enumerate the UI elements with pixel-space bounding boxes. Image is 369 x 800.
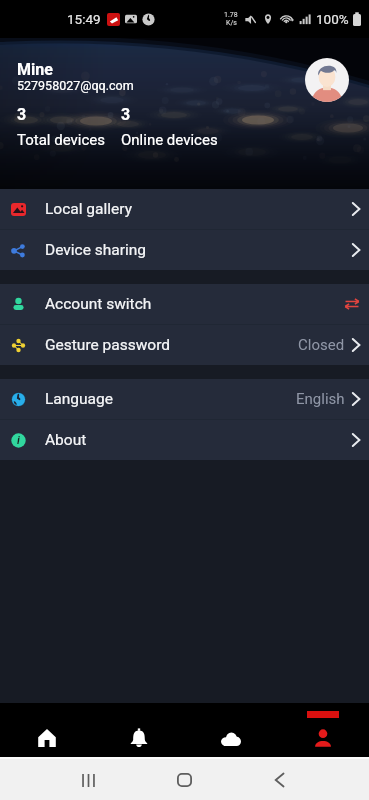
button[interactable]: Notifications (93, 703, 185, 757)
staticText: 100% (316, 11, 349, 27)
staticText: i (17, 434, 20, 447)
staticText: About (45, 431, 87, 449)
staticText: Total devices (17, 131, 105, 149)
staticText: Language (45, 390, 113, 408)
staticText: 15:49 (67, 11, 101, 27)
staticText: Gesture password (45, 336, 171, 354)
staticText: Account switch (45, 295, 152, 313)
staticText: 3 (121, 105, 131, 124)
staticText: 3 (17, 105, 27, 124)
staticText: Online devices (121, 131, 218, 149)
staticText: K/s (226, 19, 237, 27)
button[interactable]: Local gallery (0, 189, 369, 229)
staticText: 1.78 (224, 11, 238, 19)
button[interactable]: Gesture password (0, 325, 369, 365)
button[interactable]: Mine (277, 703, 369, 757)
button[interactable]: Account switch (0, 284, 369, 324)
staticText: 527958027@qq.com (17, 78, 134, 93)
staticText: Mine (17, 60, 53, 79)
button[interactable]: Home (170, 766, 198, 794)
staticText: Closed (298, 336, 345, 354)
button[interactable]: Profile avatar (305, 58, 349, 102)
button[interactable]: Language (0, 379, 369, 419)
staticText: English (296, 390, 345, 408)
staticText: Device sharing (45, 241, 146, 259)
staticText: Local gallery (45, 200, 132, 218)
button[interactable]: Device sharing (0, 230, 369, 270)
button[interactable]: Recents (74, 766, 102, 794)
button[interactable]: i (0, 420, 369, 460)
button[interactable]: Back (265, 766, 293, 794)
button[interactable]: Cloud (185, 703, 277, 757)
button[interactable]: Home (0, 703, 93, 757)
